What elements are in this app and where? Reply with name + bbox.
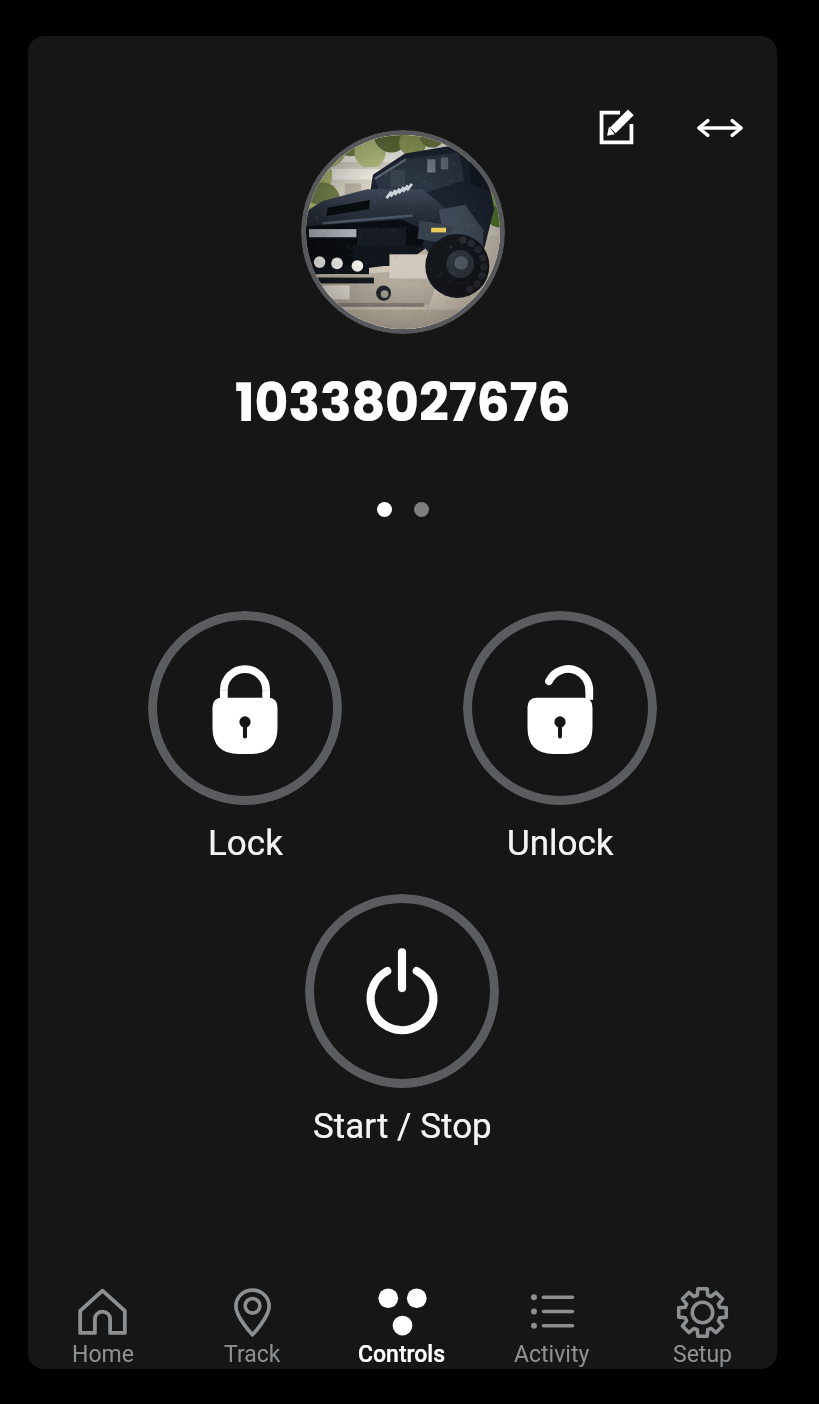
button[interactable]: Expand xyxy=(691,99,749,157)
staticText: Unlock xyxy=(507,823,614,864)
staticText: Lock xyxy=(208,823,283,864)
button[interactable]: Vehicle photo xyxy=(301,130,505,334)
staticText: Home xyxy=(72,1341,134,1368)
staticText: Activity xyxy=(514,1341,590,1368)
staticText: Controls xyxy=(358,1341,446,1368)
button[interactable]: Page 2 xyxy=(414,502,429,517)
button[interactable]: Lock xyxy=(148,611,342,805)
button[interactable]: Track xyxy=(177,1280,327,1369)
button[interactable]: Unlock xyxy=(463,611,657,805)
button[interactable]: Home xyxy=(28,1280,177,1369)
button[interactable]: Activity xyxy=(477,1280,627,1369)
button[interactable]: Page 1 xyxy=(377,502,392,517)
button[interactable]: Setup xyxy=(627,1280,777,1369)
button[interactable]: Edit vehicle xyxy=(587,98,645,156)
staticText: Track xyxy=(224,1341,281,1368)
button[interactable]: Start or stop engine xyxy=(305,894,499,1088)
button[interactable]: Controls xyxy=(327,1280,477,1369)
staticText: Setup xyxy=(673,1341,732,1368)
staticText: 10338027676 xyxy=(235,366,571,439)
staticText: Start / Stop xyxy=(313,1106,492,1147)
